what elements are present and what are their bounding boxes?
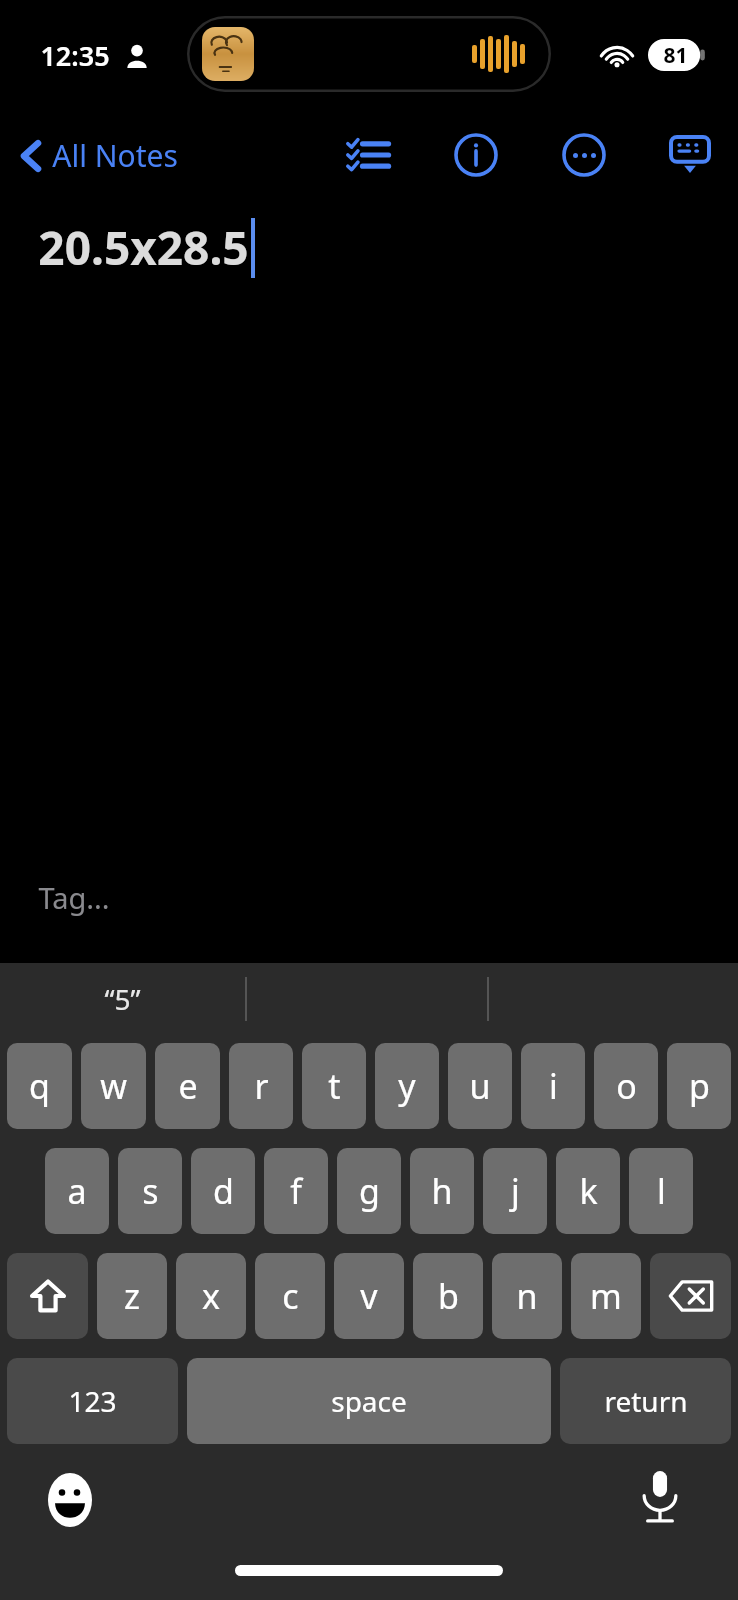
button[interactable]: r — [229, 1043, 293, 1129]
staticText: l — [657, 1168, 666, 1214]
button[interactable]: Info — [448, 127, 504, 183]
staticText: z — [124, 1273, 140, 1319]
button[interactable]: z — [97, 1253, 167, 1339]
button[interactable]: n — [492, 1253, 562, 1339]
staticText: 12:35 — [40, 37, 110, 74]
button[interactable]: Checklist — [340, 127, 396, 183]
staticText: a — [67, 1168, 87, 1214]
button[interactable]: b — [413, 1253, 483, 1339]
staticText: y — [398, 1063, 416, 1109]
button[interactable]: m — [571, 1253, 641, 1339]
button[interactable]: e — [155, 1043, 220, 1129]
staticText: k — [579, 1168, 598, 1214]
button[interactable]: o — [594, 1043, 658, 1129]
button[interactable]: a — [45, 1148, 109, 1234]
button[interactable]: Hide keyboard — [662, 127, 718, 183]
button[interactable]: c — [255, 1253, 325, 1339]
staticText: g — [359, 1168, 380, 1214]
button[interactable]: space — [187, 1358, 551, 1444]
button[interactable]: f — [264, 1148, 328, 1234]
button[interactable]: y — [375, 1043, 439, 1129]
button[interactable]: s — [118, 1148, 182, 1234]
button[interactable]: d — [191, 1148, 255, 1234]
button[interactable]: Tag... — [38, 878, 110, 917]
staticText: o — [616, 1063, 637, 1109]
staticText: space — [331, 1382, 407, 1420]
staticText: d — [213, 1168, 234, 1214]
button[interactable]: w — [81, 1043, 146, 1129]
staticText: h — [431, 1168, 453, 1214]
staticText: Tag... — [38, 878, 110, 917]
staticText: f — [290, 1168, 302, 1214]
button[interactable]: t — [302, 1043, 366, 1129]
button[interactable]: All Notes — [14, 127, 184, 184]
button[interactable]: Backspace — [650, 1253, 731, 1339]
button[interactable]: Dictate — [632, 1470, 688, 1526]
staticText: p — [689, 1063, 710, 1109]
staticText: c — [282, 1273, 299, 1319]
button[interactable]: 123 — [7, 1358, 178, 1444]
staticText: x — [202, 1273, 220, 1319]
staticText: return — [604, 1382, 688, 1420]
staticText: v — [360, 1273, 378, 1319]
button[interactable]: u — [448, 1043, 512, 1129]
staticText: u — [469, 1063, 491, 1109]
staticText: n — [516, 1273, 538, 1319]
button[interactable]: i — [521, 1043, 585, 1129]
button[interactable]: k — [556, 1148, 620, 1234]
button[interactable]: return — [560, 1358, 731, 1444]
button[interactable]: l — [629, 1148, 693, 1234]
button[interactable]: p — [667, 1043, 731, 1129]
staticText: r — [254, 1063, 269, 1109]
button[interactable]: g — [337, 1148, 401, 1234]
staticText: w — [100, 1063, 127, 1109]
button[interactable]: More options — [556, 127, 612, 183]
button[interactable]: Shift — [7, 1253, 88, 1339]
staticText: 123 — [68, 1382, 117, 1420]
staticText: t — [328, 1063, 341, 1109]
button[interactable]: Emoji keyboard — [42, 1472, 98, 1528]
button[interactable]: “5” — [0, 963, 245, 1035]
staticText: s — [142, 1168, 159, 1214]
staticText: b — [438, 1273, 459, 1319]
button[interactable]: h — [410, 1148, 474, 1234]
staticText: “5” — [104, 980, 141, 1018]
staticText: j — [511, 1168, 520, 1214]
staticText: e — [178, 1063, 198, 1109]
button[interactable]: x — [176, 1253, 246, 1339]
button[interactable]: j — [483, 1148, 547, 1234]
staticText: All Notes — [52, 135, 178, 176]
staticText: q — [29, 1063, 50, 1109]
staticText: m — [590, 1273, 622, 1319]
button[interactable]: q — [7, 1043, 72, 1129]
staticText: 81 — [663, 41, 688, 70]
button[interactable]: v — [334, 1253, 404, 1339]
staticText: i — [549, 1063, 558, 1109]
staticText: 20.5x28.5 — [38, 216, 249, 279]
